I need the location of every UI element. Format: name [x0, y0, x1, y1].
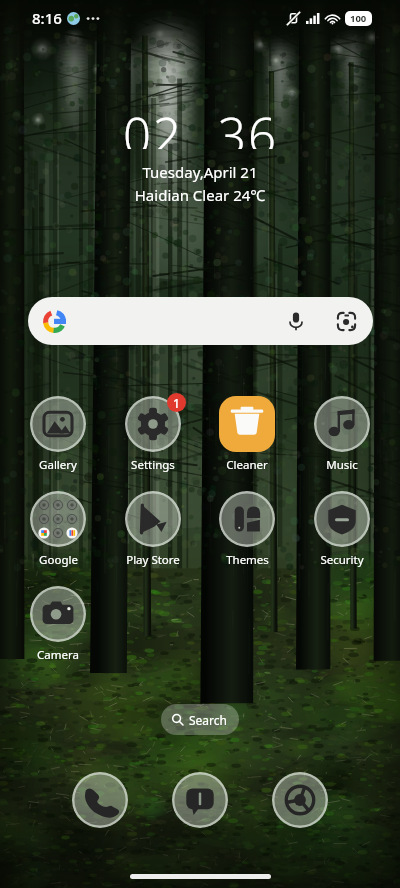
other: Google Lens: [336, 311, 357, 332]
button[interactable]: Play Store: [106, 491, 200, 568]
staticText: Music: [326, 457, 358, 473]
staticText: Camera: [37, 647, 79, 663]
button[interactable]: Google: [11, 491, 105, 568]
staticText: 1: [173, 395, 180, 411]
button[interactable]: Search: [161, 704, 239, 735]
staticText: Cleaner: [226, 457, 268, 473]
staticText: 8:16: [32, 8, 62, 28]
button[interactable]: Voice search: [28, 297, 373, 345]
button[interactable]: Music: [295, 396, 389, 473]
other: Voice search: [286, 311, 306, 331]
staticText: 100: [350, 12, 367, 25]
button[interactable]: 1: [106, 396, 200, 473]
button[interactable]: Messages: [172, 772, 228, 828]
staticText: 36: [218, 102, 278, 149]
staticText: 02: [123, 102, 183, 149]
button[interactable]: Phone: [72, 772, 128, 828]
staticText: Security: [320, 552, 364, 568]
staticText: Tuesday,April 21: [0, 162, 400, 182]
staticText: Haidian Clear 24℃: [0, 185, 400, 205]
button[interactable]: Gallery: [11, 396, 105, 473]
staticText: Play Store: [126, 552, 180, 568]
button[interactable]: Security: [295, 491, 389, 568]
button[interactable]: Cleaner: [200, 396, 294, 473]
staticText: Google: [39, 552, 78, 568]
button[interactable]: Chrome: [272, 772, 328, 828]
staticText: Search: [189, 712, 227, 728]
staticText: Settings: [131, 457, 175, 473]
button[interactable]: Themes: [200, 491, 294, 568]
staticText: Themes: [226, 552, 269, 568]
staticText: Gallery: [39, 457, 77, 473]
button[interactable]: Camera: [11, 586, 105, 663]
